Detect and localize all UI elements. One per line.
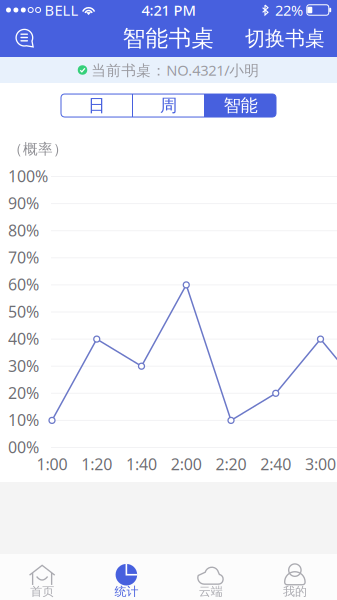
staticText: 10% [8,409,39,430]
staticText: 切换书桌 [245,26,325,51]
staticText: 当前书桌：NO.4321/小明 [91,60,259,80]
button[interactable]: 智能 [205,94,276,117]
staticText: 日 [88,95,105,116]
staticText: 80% [8,220,39,241]
staticText: 云端 [199,584,223,599]
staticText: 50% [8,301,39,322]
staticText: 30% [8,355,39,376]
staticText: 4:21 PM [141,0,195,20]
staticText: 20% [8,382,39,403]
staticText: 00% [8,436,39,458]
staticText: 2:20 [215,453,246,475]
staticText: 1:20 [81,453,112,475]
staticText: 40% [8,328,39,349]
staticText: 100% [8,165,48,187]
button[interactable]: 统计 [84,554,168,600]
staticText: BELL [45,0,79,20]
button[interactable]: 我的 [253,554,337,600]
staticText: 2:40 [260,453,291,475]
staticText: 70% [8,247,39,268]
staticText: 3:00 [305,453,336,475]
staticText: 2:00 [171,453,202,475]
staticText: 60% [8,274,39,295]
staticText: 90% [8,192,39,214]
button[interactable]: 日 [61,94,132,117]
button[interactable]: 首页 [0,554,84,600]
button[interactable]: 云端 [168,554,253,600]
button[interactable]: 消息 [6,20,44,56]
staticText: 统计 [114,584,138,599]
staticText: 我的 [283,584,307,599]
staticText: （概率） [8,140,68,158]
staticText: 周 [160,95,177,116]
staticText: 智能 [223,95,257,116]
button[interactable]: 切换书桌 [239,20,331,56]
staticText: 22% [275,0,303,20]
staticText: 1:40 [126,453,157,475]
button[interactable]: 周 [133,94,204,117]
staticText: 1:00 [36,453,67,475]
staticText: 智能书桌 [122,25,214,52]
staticText: 首页 [30,584,54,599]
